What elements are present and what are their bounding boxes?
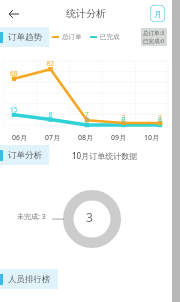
- staticText: 09月: [111, 133, 127, 143]
- staticText: 统计分析: [66, 7, 106, 20]
- staticText: 08月: [78, 133, 94, 143]
- button[interactable]: 订单分析: [0, 145, 49, 165]
- staticText: 月: [154, 9, 162, 19]
- staticText: 3: [86, 209, 93, 225]
- button[interactable]: 月: [150, 5, 165, 22]
- staticText: 未完成: 3: [17, 212, 46, 222]
- staticText: 07月: [45, 133, 61, 143]
- staticText: 06月: [12, 133, 28, 143]
- staticText: 订单分析: [8, 150, 42, 161]
- staticText: 总订单:3: [143, 29, 165, 37]
- button[interactable]: 人员排行榜: [0, 269, 58, 289]
- button[interactable]: Back: [4, 4, 24, 24]
- staticText: 10月订单统计数据: [72, 150, 138, 161]
- staticText: 人员排行榜: [8, 274, 51, 285]
- staticText: 10月: [144, 133, 160, 143]
- button[interactable]: 订单趋势: [0, 27, 49, 47]
- staticText: 总订单: [62, 33, 82, 41]
- staticText: 已完成: [100, 33, 120, 41]
- staticText: 订单趋势: [8, 32, 42, 43]
- staticText: 已完成:0: [143, 37, 165, 45]
